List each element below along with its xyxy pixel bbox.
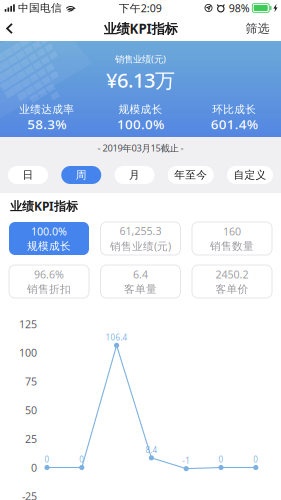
staticText: 年至今 [174, 168, 207, 181]
button[interactable]: 年至今 [168, 166, 214, 184]
button[interactable]: 自定义 [227, 166, 273, 184]
staticText: 规模成长 [27, 239, 71, 253]
staticText: 筛选 [245, 21, 269, 36]
staticText: 销售数量 [210, 239, 254, 253]
staticText: 601.4% [211, 115, 258, 133]
staticText: 96.6% [34, 267, 64, 282]
staticText: 75 [25, 374, 37, 388]
staticText: 周 [76, 168, 87, 181]
staticText: 0 [253, 454, 258, 465]
staticText: 100.0% [31, 224, 67, 239]
staticText: 100 [19, 346, 37, 360]
staticText: 61,255.3 [119, 224, 161, 238]
staticText: -1 [182, 455, 190, 466]
button[interactable]: 月 [114, 166, 154, 184]
button[interactable]: 周 [61, 166, 101, 184]
button[interactable]: 96.6% [9, 265, 89, 298]
button[interactable]: 160 [192, 222, 272, 255]
staticText: 下午2:09 [119, 1, 162, 15]
staticText: 0 [79, 454, 84, 465]
button[interactable]: 日 [8, 166, 48, 184]
staticText: 106.4 [106, 332, 128, 343]
staticText: 中国电信 [18, 1, 62, 14]
staticText: 25 [25, 432, 37, 446]
button[interactable]: 6.4 [100, 265, 180, 298]
staticText: 98% [229, 1, 250, 15]
staticText: -25 [22, 489, 37, 500]
staticText: 销售业绩(元) [110, 239, 171, 253]
staticText: ¥6.13万 [106, 67, 175, 93]
staticText: 自定义 [233, 168, 266, 181]
staticText: 50 [25, 403, 37, 417]
staticText: 业绩达成率 [19, 103, 74, 116]
staticText: 环比成长 [212, 103, 256, 116]
staticText: 0 [218, 454, 223, 465]
staticText: 日 [22, 168, 33, 181]
staticText: 8.4 [145, 444, 157, 455]
staticText: 125 [19, 317, 37, 331]
staticText: 销售折扣 [27, 282, 71, 296]
staticText: 2450.2 [215, 267, 248, 282]
staticText: 业绩KPI指标 [103, 20, 177, 37]
button[interactable]: 2450.2 [192, 265, 272, 298]
staticText: 6.4 [133, 267, 148, 282]
staticText: - 2019年03月15截止 - [97, 142, 183, 154]
staticText: 0 [31, 460, 37, 475]
button[interactable]: 100.0% [9, 222, 89, 255]
staticText: 客单量 [124, 282, 157, 296]
button[interactable]: 筛选 [241, 16, 274, 41]
button[interactable]: 返回 [0, 16, 19, 41]
staticText: 销售业绩(元) [115, 53, 166, 65]
staticText: 160 [223, 224, 241, 239]
staticText: 业绩KPI指标 [10, 198, 78, 214]
staticText: 0 [44, 454, 49, 465]
staticText: 58.3% [27, 115, 66, 133]
staticText: 规模成长 [118, 103, 162, 116]
staticText: 100.0% [117, 115, 164, 133]
staticText: 客单价 [215, 282, 248, 296]
staticText: 月 [129, 168, 140, 181]
button[interactable]: 61,255.3 [100, 222, 180, 255]
